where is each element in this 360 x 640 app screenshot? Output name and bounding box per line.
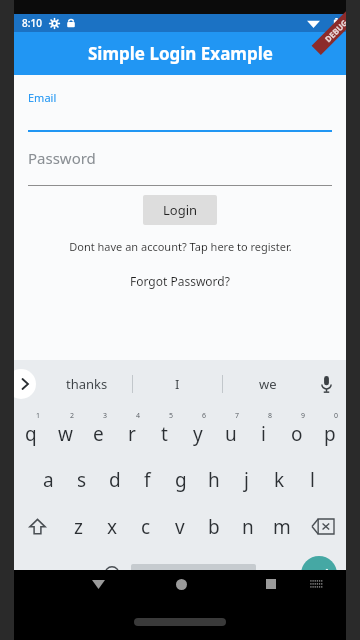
staticText: Password bbox=[28, 148, 96, 168]
staticText: Dont have an account? Tap here to regist… bbox=[69, 239, 292, 254]
staticText: 2 bbox=[70, 411, 75, 421]
button[interactable]: Emoji bbox=[96, 550, 127, 598]
button[interactable]: l bbox=[296, 456, 329, 503]
staticText: t bbox=[161, 421, 168, 447]
button[interactable]: 7 bbox=[214, 408, 247, 456]
staticText: 3 bbox=[103, 411, 108, 421]
staticText: c bbox=[141, 514, 151, 540]
button[interactable]: 2 bbox=[48, 408, 82, 456]
button[interactable]: Enter bbox=[291, 550, 346, 598]
button[interactable]: f bbox=[131, 456, 164, 503]
staticText: 0 bbox=[334, 411, 339, 421]
staticText: o bbox=[291, 421, 303, 447]
button[interactable]: , bbox=[65, 550, 96, 598]
button[interactable]: 5 bbox=[148, 408, 181, 456]
button[interactable]: k bbox=[263, 456, 296, 503]
button[interactable]: More suggestions bbox=[6, 369, 36, 399]
staticText: n bbox=[242, 514, 254, 540]
button[interactable]: Shift bbox=[14, 503, 61, 550]
button[interactable]: Forgot Password? bbox=[28, 273, 332, 289]
staticText: x bbox=[107, 514, 118, 540]
button[interactable]: . bbox=[260, 550, 291, 598]
staticText: DEBUG bbox=[322, 17, 350, 44]
staticText: 4 bbox=[136, 411, 141, 421]
staticText: d bbox=[109, 467, 121, 493]
button[interactable]: ?123 bbox=[14, 550, 65, 598]
button[interactable]: I bbox=[133, 360, 222, 408]
staticText: y bbox=[193, 421, 203, 447]
button[interactable]: 8 bbox=[247, 408, 280, 456]
staticText: p bbox=[324, 421, 336, 447]
staticText: I bbox=[175, 375, 180, 393]
button[interactable]: b bbox=[197, 503, 231, 550]
button[interactable]: Recents bbox=[254, 570, 288, 598]
staticText: u bbox=[225, 421, 237, 447]
button[interactable]: we bbox=[223, 360, 312, 408]
button[interactable]: Dont have an account? Tap here to regist… bbox=[28, 239, 332, 254]
button[interactable]: Email bbox=[28, 90, 332, 132]
button[interactable]: 6 bbox=[181, 408, 214, 456]
button[interactable]: d bbox=[98, 456, 131, 503]
staticText: i bbox=[261, 421, 266, 447]
staticText: m bbox=[273, 514, 291, 540]
staticText: we bbox=[259, 375, 277, 393]
button[interactable]: Backspace bbox=[299, 503, 346, 550]
button[interactable]: 3 bbox=[82, 408, 115, 456]
button[interactable]: s bbox=[65, 456, 98, 503]
button[interactable]: Password bbox=[28, 146, 332, 186]
staticText: q bbox=[25, 421, 37, 447]
staticText: b bbox=[208, 514, 220, 540]
staticText: w bbox=[58, 421, 73, 447]
staticText: j bbox=[244, 467, 249, 493]
staticText: 8:10 bbox=[22, 16, 42, 30]
staticText: . bbox=[274, 562, 278, 581]
staticText: 6 bbox=[202, 411, 207, 421]
button[interactable]: a bbox=[32, 456, 65, 503]
button[interactable]: 1 bbox=[14, 408, 48, 456]
button[interactable]: v bbox=[163, 503, 197, 550]
staticText: 7 bbox=[235, 411, 240, 421]
staticText: 9 bbox=[301, 411, 306, 421]
staticText: 5 bbox=[169, 411, 174, 421]
staticText: , bbox=[79, 562, 83, 581]
staticText: h bbox=[208, 467, 220, 493]
staticText: Login bbox=[163, 201, 198, 219]
staticText: v bbox=[175, 514, 185, 540]
staticText: thanks bbox=[66, 375, 108, 393]
button[interactable]: Home bbox=[161, 570, 201, 598]
button[interactable]: x bbox=[95, 503, 129, 550]
staticText: f bbox=[144, 467, 151, 493]
button[interactable]: 4 bbox=[115, 408, 148, 456]
button[interactable]: Back bbox=[78, 570, 118, 598]
button[interactable]: z bbox=[61, 503, 95, 550]
staticText: r bbox=[128, 421, 136, 447]
staticText: s bbox=[77, 467, 87, 493]
button[interactable]: j bbox=[230, 456, 263, 503]
button[interactable]: thanks bbox=[42, 360, 132, 408]
button[interactable]: h bbox=[197, 456, 230, 503]
button[interactable]: Switch keyboard bbox=[299, 570, 333, 598]
button[interactable]: n bbox=[231, 503, 265, 550]
button[interactable]: c bbox=[129, 503, 163, 550]
staticText: Simple Login Example bbox=[88, 42, 273, 65]
staticText: g bbox=[175, 467, 187, 493]
button[interactable]: Voice input bbox=[314, 372, 338, 396]
button[interactable]: 0 bbox=[313, 408, 346, 456]
staticText: e bbox=[93, 421, 104, 447]
staticText: 8 bbox=[268, 411, 273, 421]
button[interactable]: Login bbox=[143, 195, 217, 225]
staticText: 1 bbox=[36, 411, 41, 421]
button[interactable] bbox=[127, 550, 260, 598]
button[interactable]: m bbox=[265, 503, 299, 550]
staticText: z bbox=[74, 514, 83, 540]
button[interactable]: 9 bbox=[280, 408, 313, 456]
staticText: Email bbox=[28, 90, 57, 105]
staticText: ?123 bbox=[26, 565, 54, 583]
staticText: l bbox=[310, 467, 315, 493]
staticText: a bbox=[43, 467, 54, 493]
staticText: Forgot Password? bbox=[130, 273, 230, 289]
button[interactable]: g bbox=[164, 456, 197, 503]
staticText: k bbox=[274, 467, 285, 493]
